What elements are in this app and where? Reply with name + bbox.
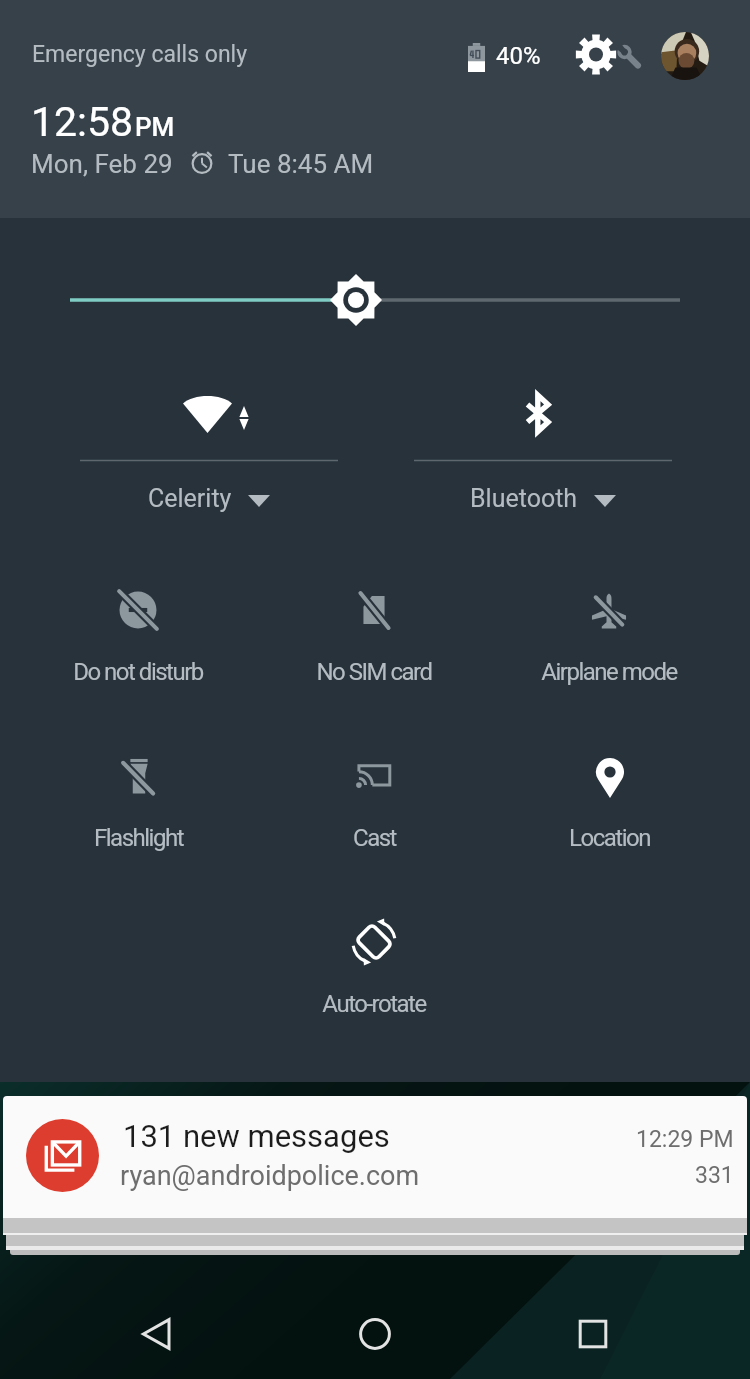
staticText: Emergency calls only	[32, 41, 248, 68]
staticText: 331	[695, 1162, 734, 1189]
staticText: Bluetooth	[470, 484, 578, 513]
staticText: Flashlight	[94, 824, 183, 852]
button[interactable]: Settings	[577, 30, 647, 80]
staticText: Mon, Feb 29	[31, 149, 173, 179]
staticText: 40%	[496, 42, 541, 70]
staticText: Celerity	[148, 484, 232, 513]
button[interactable]: Celerity	[80, 470, 338, 526]
button[interactable]: Brightness	[330, 274, 382, 326]
staticText: Airplane mode	[541, 658, 677, 686]
button[interactable]: User account	[661, 32, 709, 80]
staticText: No SIM card	[316, 658, 432, 686]
button[interactable]: 131 new messages	[3, 1096, 747, 1218]
staticText: ryan@androidpolice.com	[120, 1160, 420, 1192]
staticText: Tue 8:45 AM	[228, 149, 374, 179]
button[interactable]: Bluetooth	[414, 470, 672, 526]
button[interactable]: Bluetooth	[414, 378, 672, 468]
button[interactable]: Recent apps	[533, 1274, 653, 1379]
staticText: Do not disturb	[73, 658, 203, 686]
button[interactable]: Airplane mode	[491, 586, 727, 706]
button[interactable]: Flashlight	[20, 752, 256, 872]
button[interactable]: Back	[97, 1274, 217, 1379]
button[interactable]: Cast	[256, 752, 492, 872]
button[interactable]: No SIM card	[256, 586, 492, 706]
button[interactable]: Do not disturb	[20, 586, 256, 706]
staticText: PM	[135, 112, 175, 142]
button[interactable]: Auto-rotate	[256, 918, 492, 1038]
staticText: Location	[569, 824, 650, 852]
button[interactable]: Wi-Fi	[80, 378, 338, 468]
button[interactable]: Location	[491, 752, 727, 872]
staticText: 12:29 PM	[636, 1126, 734, 1153]
staticText: Cast	[353, 824, 396, 852]
button[interactable]: Home	[315, 1274, 435, 1379]
staticText: 12:58	[31, 98, 134, 146]
staticText: Auto-rotate	[322, 990, 426, 1018]
staticText: 131 new messages	[123, 1118, 390, 1154]
